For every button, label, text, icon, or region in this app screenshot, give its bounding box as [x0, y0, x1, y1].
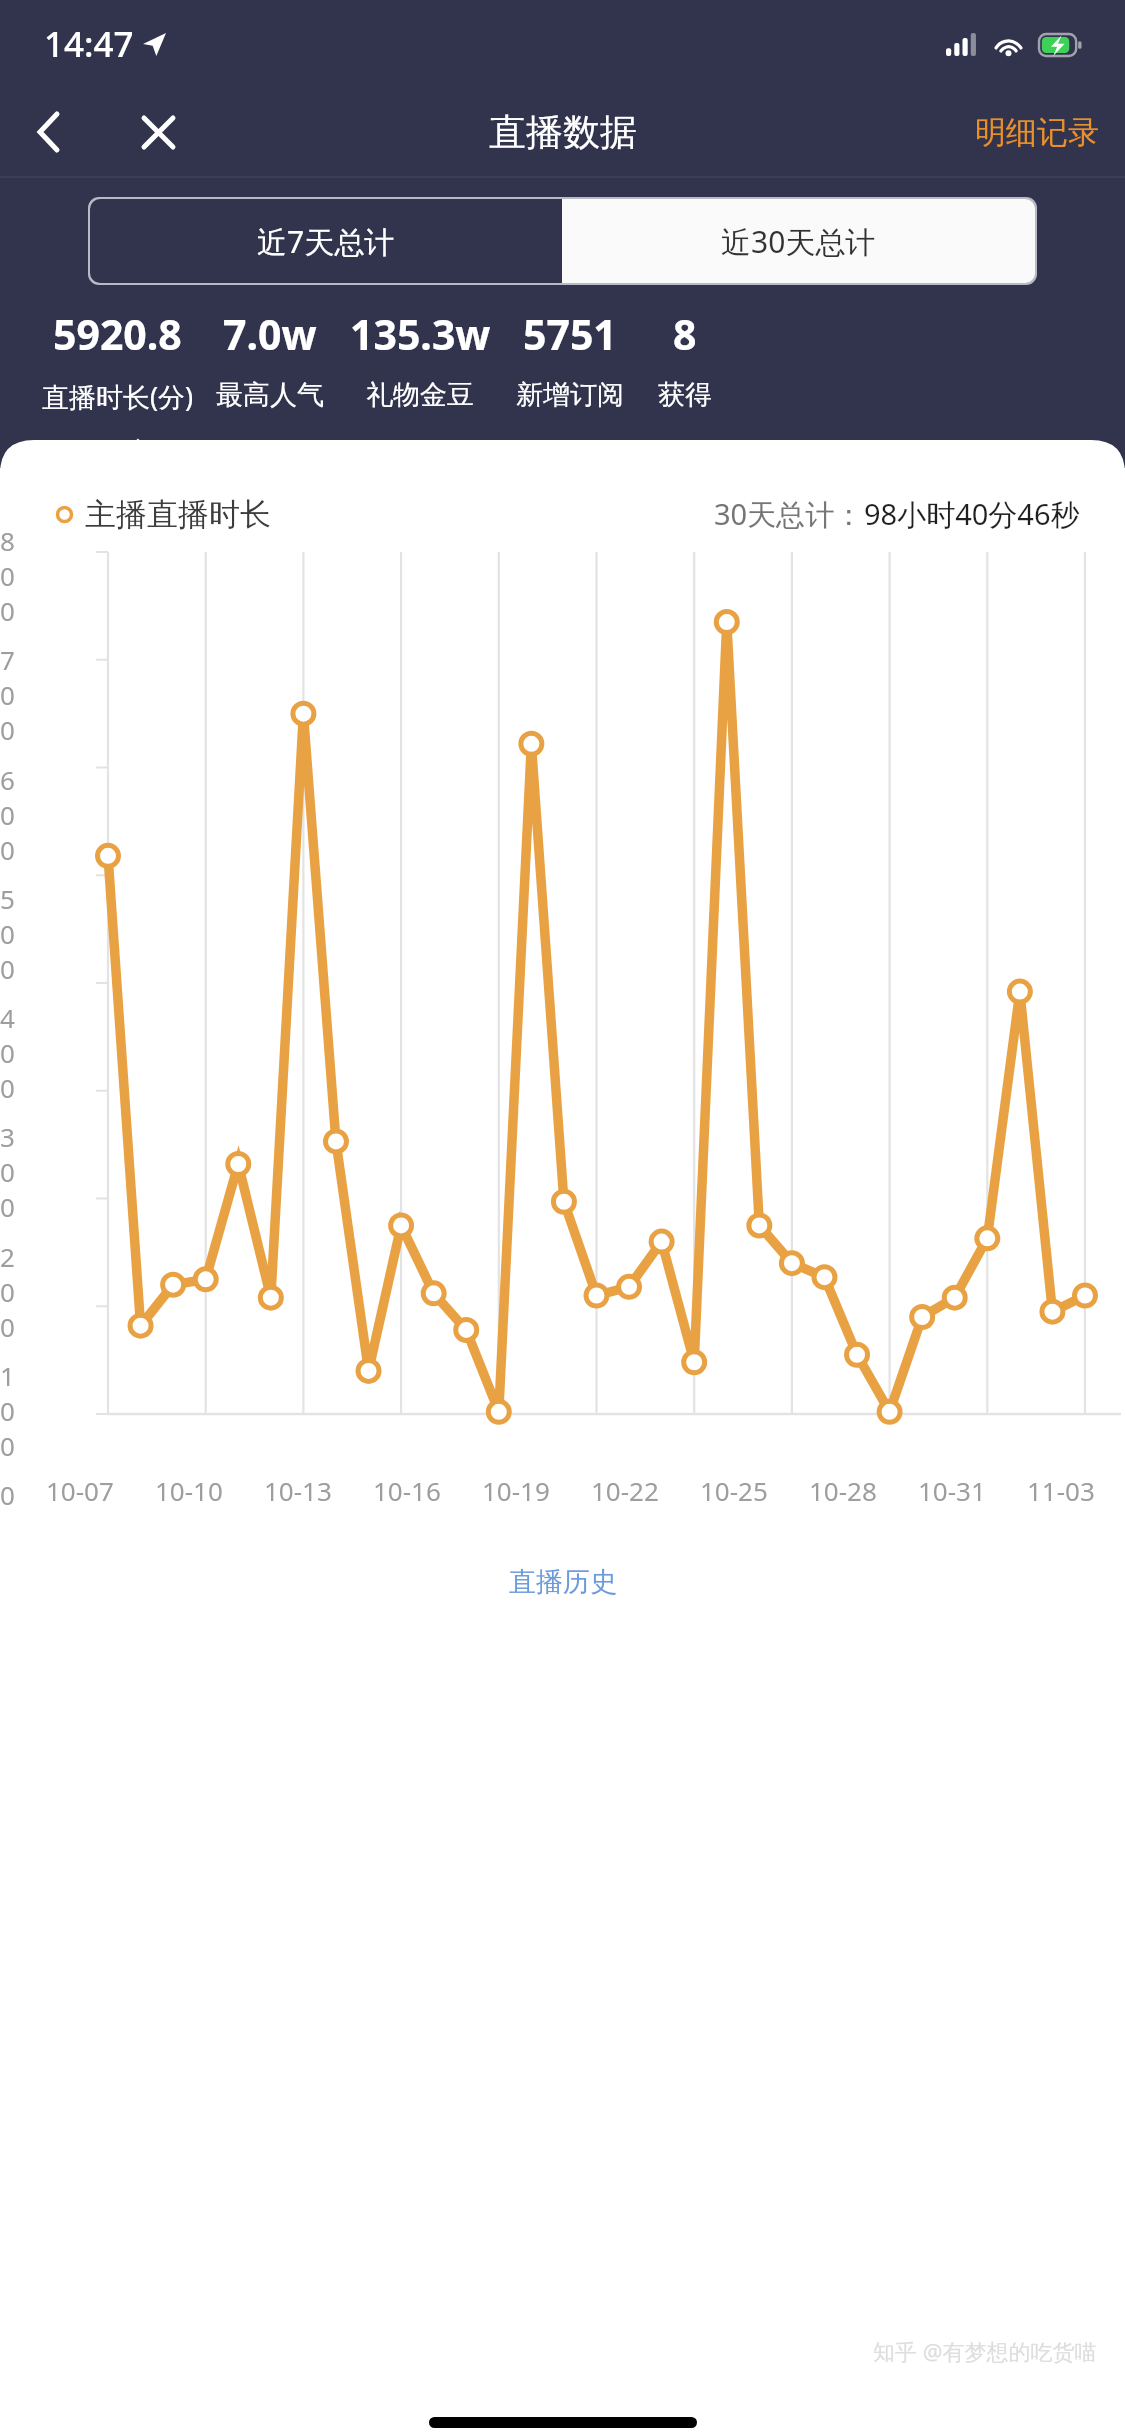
- staticText: 7.0w: [223, 306, 317, 362]
- staticText: 30天总计：: [714, 494, 864, 534]
- staticText: 500: [0, 881, 28, 986]
- staticText: 0: [0, 1477, 28, 1512]
- staticText: 10-25: [700, 1473, 768, 1508]
- staticText: 近7天总计: [257, 221, 395, 262]
- staticText: 新增订阅: [516, 378, 624, 412]
- staticText: 10-13: [264, 1473, 332, 1508]
- staticText: 知乎 @有梦想的吃货喵: [873, 2336, 1097, 2366]
- staticText: 5751: [523, 306, 617, 362]
- staticText: 10-10: [155, 1473, 223, 1508]
- staticText: 10-28: [809, 1473, 877, 1508]
- staticText: 5920.8: [53, 306, 182, 362]
- staticText: 700: [0, 642, 28, 747]
- staticText: 10-22: [591, 1473, 659, 1508]
- button[interactable]: Back: [14, 98, 82, 166]
- staticText: 98小时40分46秒: [864, 494, 1080, 534]
- staticText: 最高人气: [216, 378, 324, 412]
- staticText: 200: [0, 1239, 28, 1344]
- button[interactable]: Close: [124, 98, 192, 166]
- staticText: 800: [0, 523, 28, 628]
- button[interactable]: 近30天总计: [562, 199, 1035, 283]
- staticText: 400: [0, 1000, 28, 1105]
- staticText: 10-16: [373, 1473, 441, 1508]
- button[interactable]: 明细记录: [949, 99, 1125, 166]
- staticText: 300: [0, 1119, 28, 1224]
- staticText: 14:47: [44, 20, 134, 68]
- staticText: 10-19: [482, 1473, 550, 1508]
- staticText: 135.3w: [350, 306, 491, 362]
- staticText: 直播时长(分): [42, 378, 194, 415]
- staticText: 100: [0, 1358, 28, 1463]
- staticText: 10-07: [46, 1473, 114, 1508]
- staticText: 主播直播时长: [85, 495, 271, 534]
- staticText: 11-03: [1027, 1473, 1095, 1508]
- staticText: 获得: [658, 378, 712, 412]
- staticText: 近30天总计: [721, 221, 876, 262]
- staticText: 直播数据: [489, 109, 637, 156]
- button[interactable]: 直播历史: [0, 1560, 1125, 1604]
- staticText: 10-31: [918, 1473, 986, 1508]
- staticText: 直播历史: [509, 1565, 617, 1599]
- staticText: 明细记录: [975, 113, 1099, 152]
- button[interactable]: 近7天总计: [90, 199, 562, 283]
- staticText: 600: [0, 762, 28, 867]
- staticText: 礼物金豆: [366, 378, 474, 412]
- staticText: 8: [673, 306, 697, 362]
